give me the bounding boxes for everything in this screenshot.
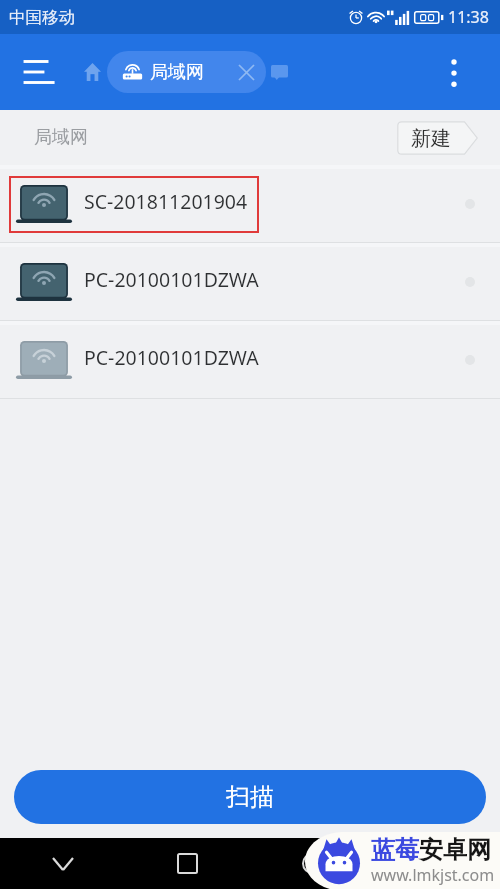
- button[interactable]: Recent apps: [125, 838, 250, 889]
- button[interactable]: Home: [250, 838, 375, 889]
- button[interactable]: 局域网: [107, 51, 266, 93]
- staticText: 中国移动: [9, 7, 75, 28]
- button[interactable]: 新建: [397, 121, 478, 155]
- button[interactable]: Messages: [265, 58, 293, 86]
- staticText: 安卓网: [419, 835, 491, 865]
- staticText: SC-201811201904: [84, 188, 248, 215]
- button[interactable]: Home: [74, 54, 110, 90]
- staticText: PC-20100101DZWA: [84, 344, 259, 371]
- button[interactable]: Hide keyboard: [0, 838, 125, 889]
- button[interactable]: SC-201811201904: [0, 165, 500, 242]
- button[interactable]: PC-20100101DZWA: [0, 243, 500, 320]
- button[interactable]: 扫描: [14, 770, 486, 824]
- button[interactable]: Clear: [227, 51, 266, 93]
- button[interactable]: PC-20100101DZWA: [0, 321, 500, 398]
- staticText: www.lmkjst.com: [371, 864, 495, 886]
- staticText: 局域网: [34, 126, 88, 149]
- button[interactable]: More options: [432, 50, 476, 94]
- staticText: 11:38: [448, 6, 489, 28]
- staticText: PC-20100101DZWA: [84, 266, 259, 293]
- button[interactable]: Back: [375, 838, 500, 889]
- staticText: 新建: [411, 126, 451, 151]
- staticText: 局域网: [150, 61, 204, 84]
- button[interactable]: Menu: [13, 46, 65, 98]
- staticText: 扫描: [226, 782, 274, 812]
- staticText: 蓝莓: [371, 835, 419, 865]
